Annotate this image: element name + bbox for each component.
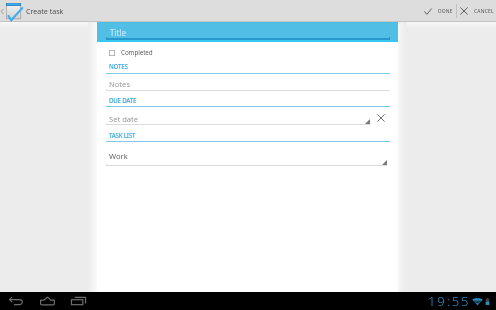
staticText: CANCEL [474, 8, 494, 15]
staticText: DUE DATE [109, 96, 137, 104]
staticText: DONE [438, 8, 453, 15]
button[interactable]: DONE [421, 0, 456, 22]
button[interactable]: Navigate up [0, 0, 64, 22]
button[interactable]: CANCEL [457, 0, 496, 22]
button[interactable]: Title [97, 22, 398, 41]
staticText: Notes [109, 79, 131, 89]
button[interactable]: Home [36, 292, 58, 310]
staticText: Set date [109, 114, 139, 124]
staticText: Completed [121, 48, 153, 57]
button[interactable] [106, 74, 390, 92]
button[interactable]: Completed [97, 45, 398, 60]
button[interactable] [106, 146, 387, 167]
staticText: Create task [26, 6, 64, 16]
button[interactable]: Recent apps [67, 292, 89, 310]
button[interactable]: Status: 19:55, wifi, battery [428, 292, 496, 310]
staticText: TASK LIST [109, 131, 136, 139]
button[interactable]: Back [5, 292, 27, 310]
staticText: 19:55 [428, 292, 471, 310]
staticText: NOTES [109, 62, 128, 70]
button[interactable] [106, 109, 370, 126]
staticText: Title [110, 27, 126, 38]
button[interactable]: Clear due date [372, 109, 389, 126]
staticText: Work [109, 151, 128, 161]
